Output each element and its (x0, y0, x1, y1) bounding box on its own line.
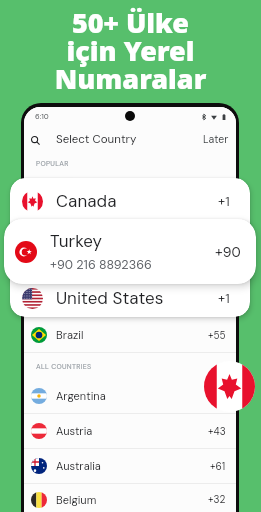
staticText: Select Country (56, 132, 137, 147)
staticText: 6:10 (35, 112, 49, 122)
staticText: Turkey (50, 230, 102, 252)
staticText: +1 (218, 290, 230, 307)
staticText: Canada (56, 190, 117, 212)
button[interactable]: Austria (24, 414, 236, 448)
button[interactable]: Turkey (4, 219, 256, 284)
button[interactable]: Australia (24, 449, 236, 483)
staticText: Later (203, 133, 229, 147)
button[interactable]: Brazil (24, 318, 236, 352)
button[interactable]: Canada (10, 183, 250, 219)
staticText: Belgium (56, 493, 97, 507)
staticText: United States (56, 287, 164, 309)
staticText: Brazil (56, 328, 84, 342)
staticText: +43 (208, 425, 226, 438)
staticText: 50+ Ülke için Yerel Numaralar (0, 4, 261, 97)
button[interactable]: Search (24, 129, 46, 151)
staticText: +55 (208, 329, 226, 342)
staticText: +90 216 8892366 (50, 257, 152, 273)
button[interactable]: Canada (204, 361, 255, 412)
staticText: +61 (210, 460, 226, 473)
staticText: Argentina (56, 389, 106, 403)
button[interactable]: Belgium (24, 484, 236, 512)
staticText: +32 (208, 493, 226, 506)
staticText: +90 (215, 243, 241, 261)
staticText: +1 (218, 193, 230, 210)
button[interactable]: United States (10, 280, 250, 316)
staticText: Austria (56, 424, 93, 438)
staticText: ALL COUNTRIES (36, 362, 92, 371)
button[interactable]: Argentina (24, 379, 236, 413)
button[interactable]: Later (194, 128, 236, 152)
staticText: Australia (56, 459, 101, 473)
staticText: POPULAR (36, 159, 69, 168)
